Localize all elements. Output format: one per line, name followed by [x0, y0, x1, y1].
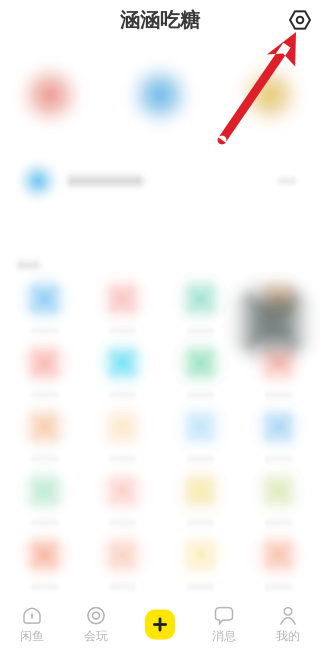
button[interactable]: 会玩 — [64, 596, 128, 653]
button[interactable]: 发布闲置 — [128, 596, 192, 653]
staticText: 我的 — [276, 629, 300, 643]
button[interactable]: 闲鱼 — [0, 596, 64, 653]
button[interactable]: 扫一扫 — [285, 5, 315, 35]
staticText: 闲鱼 — [20, 629, 44, 643]
staticText: 消息 — [212, 629, 236, 643]
staticText: 涵涵吃糖 — [120, 8, 200, 32]
staticText: 会玩 — [84, 629, 108, 643]
button[interactable]: 我的 — [256, 596, 320, 653]
button[interactable]: 消息 — [192, 596, 256, 653]
